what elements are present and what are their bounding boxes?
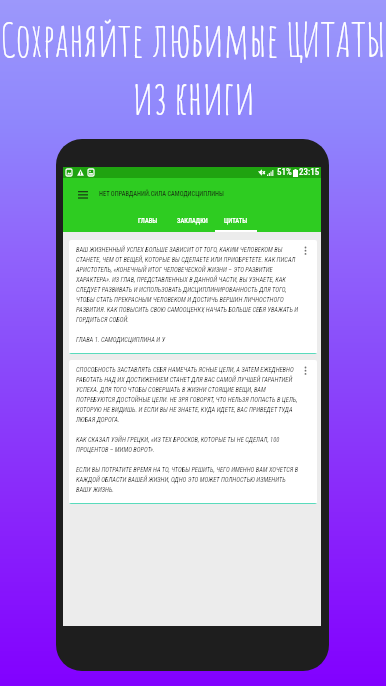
button[interactable]: Open navigation menu <box>73 184 93 204</box>
staticText: ВАШ ЖИЗНЕННЫЙ УСПЕХ БОЛЬШЕ ЗАВИСИТ ОТ ТО… <box>76 246 299 343</box>
staticText: ГЛАВЫ <box>138 217 158 225</box>
staticText: СПОСОБНОСТЬ ЗАСТАВЛЯТЬ СЕБЯ НАМЕЧАТЬ ЯСН… <box>76 366 299 493</box>
button[interactable]: ГЛАВЫ <box>125 209 170 232</box>
staticText: из книги <box>132 68 255 126</box>
staticText: 51% <box>277 167 292 178</box>
button[interactable]: СПОСОБНОСТЬ ЗАСТАВЛЯТЬ СЕБЯ НАМЕЧАТЬ ЯСН… <box>69 360 317 504</box>
staticText: НЕТ ОПРАВДАНИЙ.СИЛА САМОДИСЦИПЛИНЫ <box>99 190 224 198</box>
button[interactable]: ВАШ ЖИЗНЕННЫЙ УСПЕХ БОЛЬШЕ ЗАВИСИТ ОТ ТО… <box>69 240 317 354</box>
button[interactable]: ЗАКЛАДКИ <box>170 209 215 232</box>
staticText: Сохраняйте любимые ЦИТАТЫ <box>0 10 386 68</box>
button[interactable]: ЦИТАТЫ <box>215 209 257 232</box>
staticText: ЗАКЛАДКИ <box>177 217 208 225</box>
button[interactable]: More options <box>299 246 311 258</box>
staticText: 23:15 <box>299 167 320 178</box>
button[interactable]: More options <box>299 366 311 378</box>
staticText: ЦИТАТЫ <box>224 217 248 225</box>
